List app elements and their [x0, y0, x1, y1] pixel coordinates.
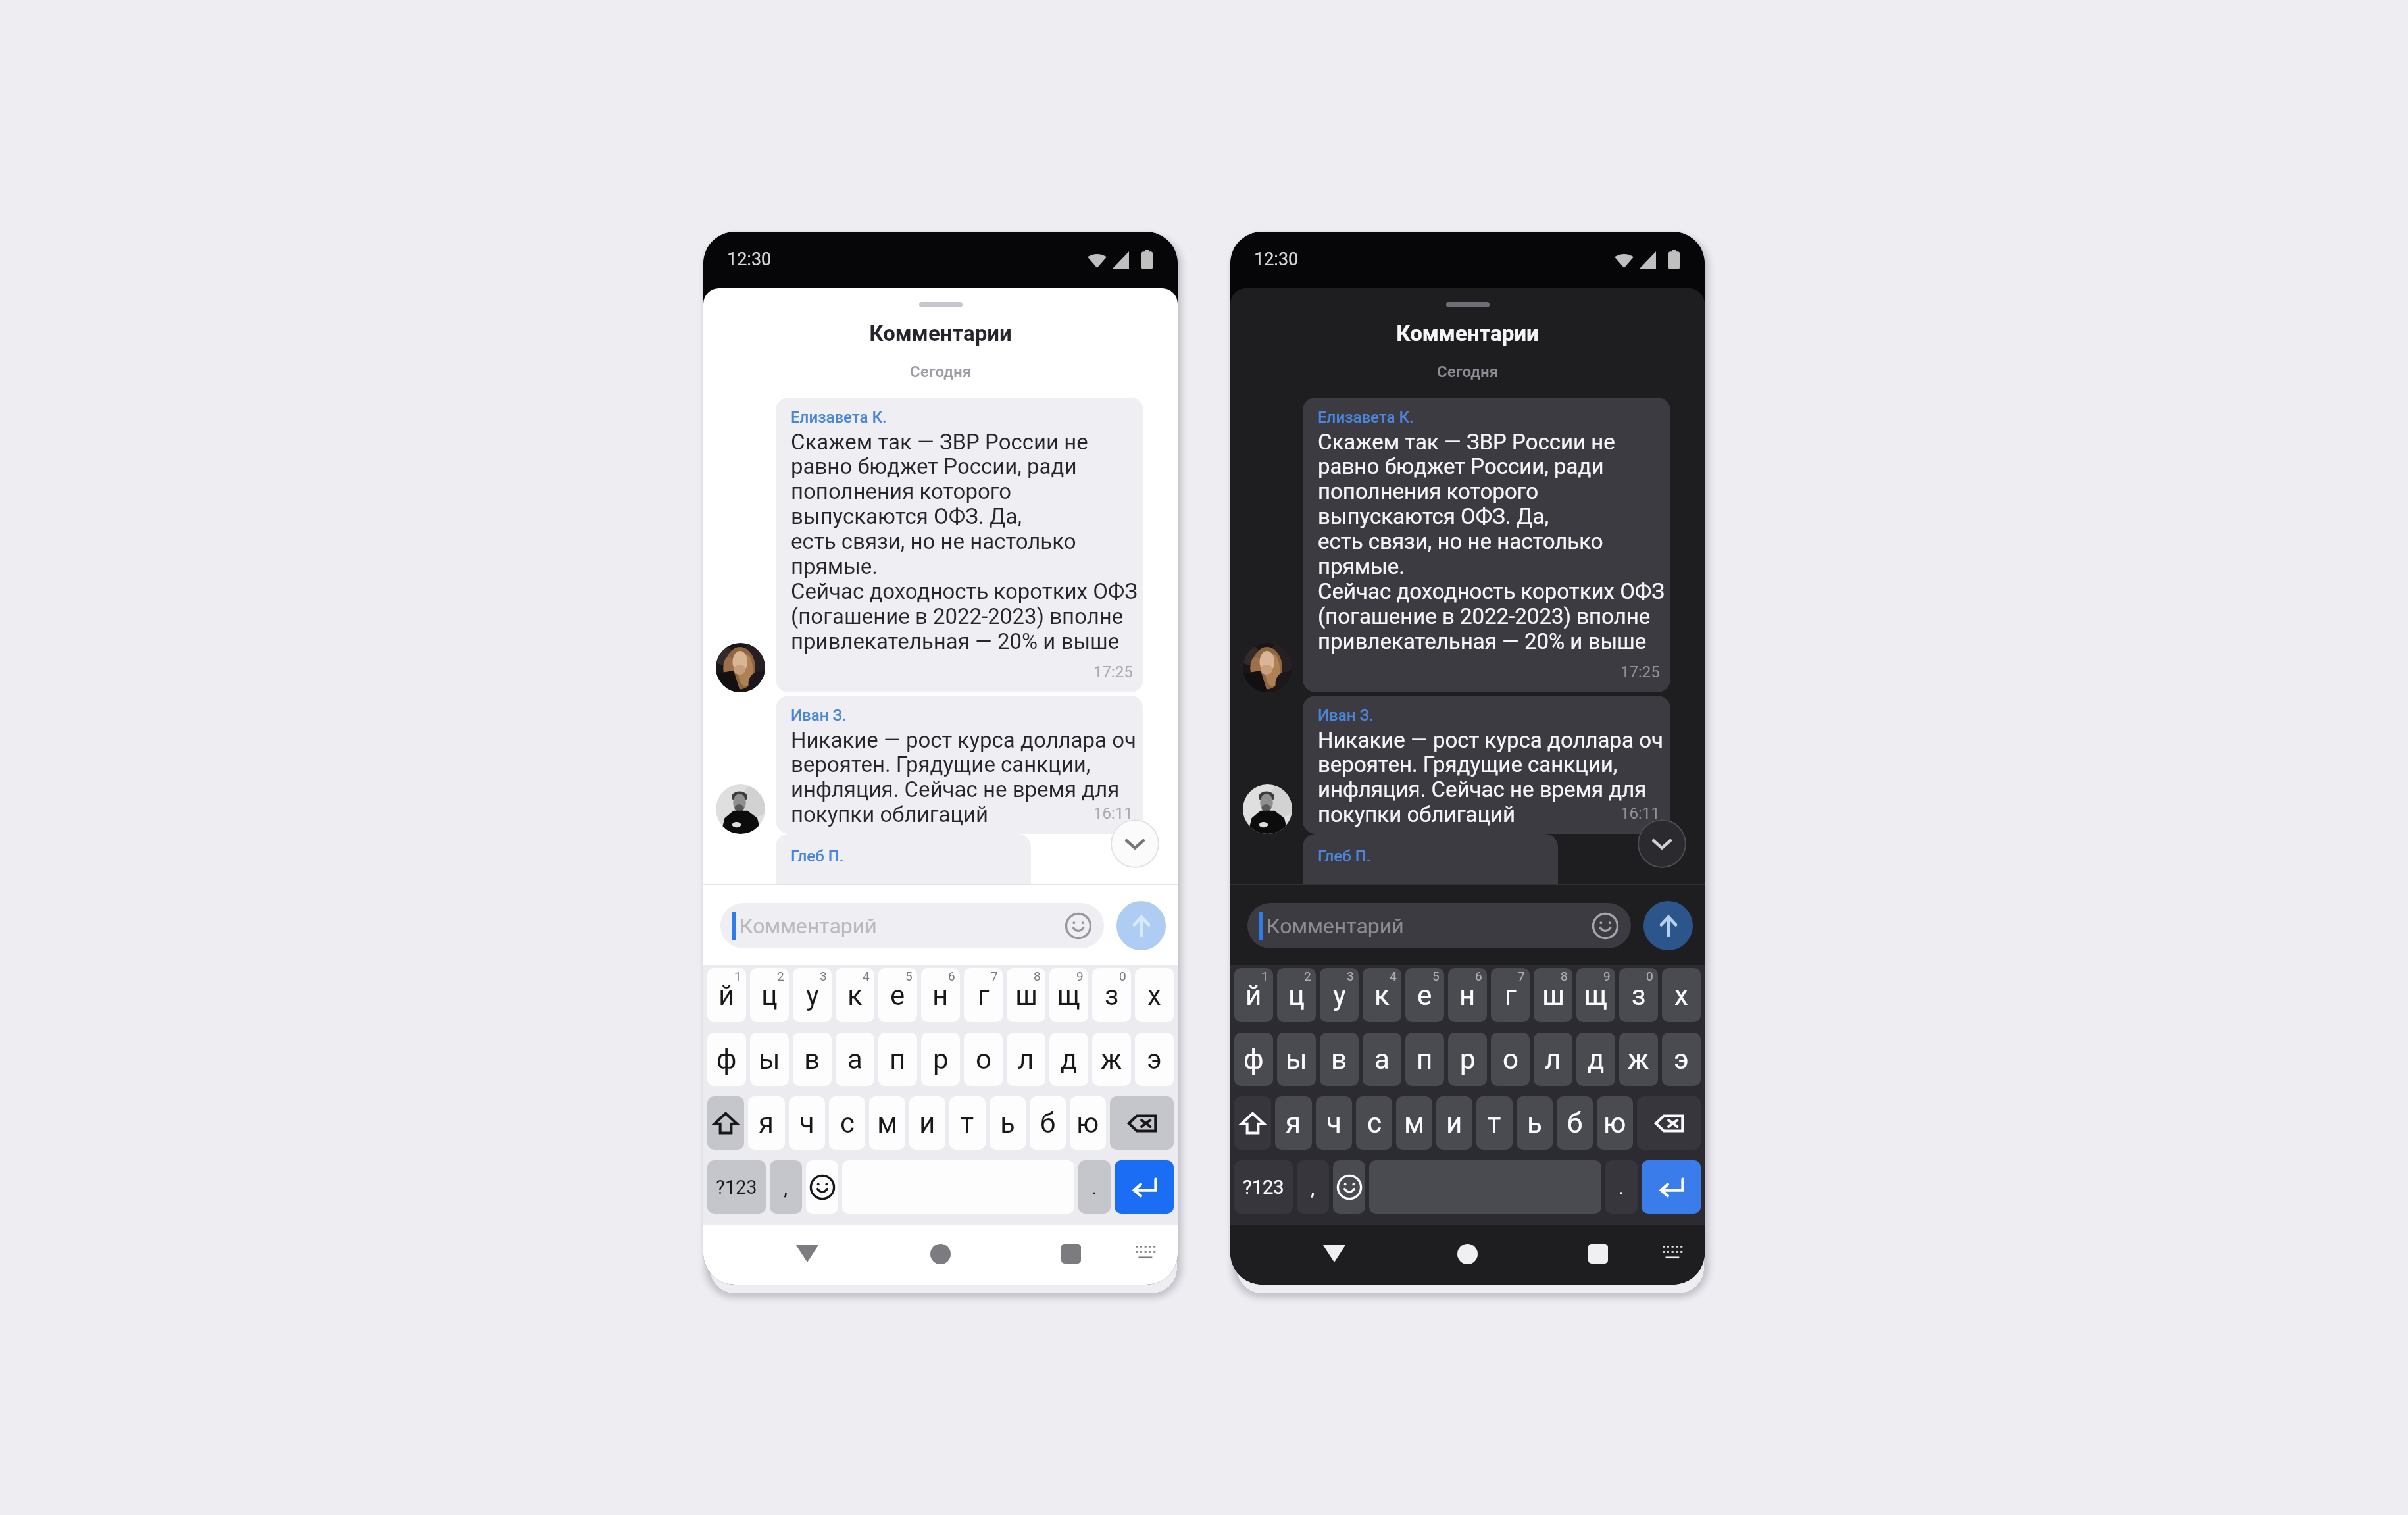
button[interactable]: Send comment [1643, 901, 1693, 950]
button[interactable]: Back [1308, 1225, 1361, 1283]
button[interactable]: о [964, 1033, 1003, 1086]
button[interactable]: Комментарий [720, 903, 1104, 948]
button[interactable]: о [1491, 1033, 1530, 1086]
button[interactable]: ю [1597, 1096, 1633, 1150]
button[interactable]: э [1135, 1033, 1174, 1086]
button[interactable]: з [1092, 968, 1131, 1022]
button[interactable]: Hide keyboard [1120, 1225, 1173, 1283]
button[interactable]: л [1534, 1033, 1572, 1086]
button[interactable]: с [829, 1096, 865, 1150]
button[interactable]: Open profile of Елизавета К. [716, 643, 765, 692]
button[interactable]: а [1363, 1033, 1401, 1086]
button[interactable]: а [836, 1033, 874, 1086]
button[interactable]: ь [1517, 1096, 1553, 1150]
button[interactable]: ?123 [1234, 1160, 1293, 1214]
button[interactable]: ц [750, 968, 789, 1022]
button[interactable]: . [1605, 1160, 1638, 1214]
button[interactable]: х [1662, 968, 1701, 1022]
button[interactable]: . [1078, 1160, 1111, 1214]
button[interactable]: ж [1619, 1033, 1658, 1086]
button[interactable]: т [1476, 1096, 1513, 1150]
button[interactable]: е [878, 968, 917, 1022]
button[interactable]: Enter [1115, 1160, 1174, 1214]
button[interactable]: Иван З. [776, 696, 1143, 834]
button[interactable]: м [1396, 1096, 1432, 1150]
button[interactable]: Елизавета К. [1303, 398, 1670, 692]
button[interactable]: Emoji [806, 1160, 838, 1214]
button[interactable]: щ [1576, 968, 1615, 1022]
button[interactable]: н [921, 968, 960, 1022]
button[interactable]: Елизавета К. [776, 398, 1143, 692]
button[interactable]: ы [750, 1033, 789, 1086]
button[interactable]: Emoji [1333, 1160, 1365, 1214]
button[interactable]: в [1320, 1033, 1359, 1086]
button[interactable]: Глеб П. [1303, 834, 1558, 893]
button[interactable]: к [836, 968, 874, 1022]
button[interactable]: , [1297, 1160, 1329, 1214]
button[interactable]: Open profile of Иван З. [1243, 784, 1292, 834]
button[interactable]: л [1007, 1033, 1045, 1086]
button[interactable]: Enter [1642, 1160, 1701, 1214]
button[interactable]: й [1234, 968, 1273, 1022]
button[interactable]: ф [707, 1033, 746, 1086]
button[interactable]: м [869, 1096, 905, 1150]
button[interactable]: р [921, 1033, 960, 1086]
button[interactable]: Home [914, 1225, 966, 1283]
button[interactable]: к [1363, 968, 1401, 1022]
button[interactable]: я [748, 1096, 785, 1150]
button[interactable]: Back [781, 1225, 834, 1283]
button[interactable]: х [1135, 968, 1174, 1022]
button[interactable]: ?123 [707, 1160, 766, 1214]
button[interactable]: г [1491, 968, 1530, 1022]
button[interactable]: в [793, 1033, 832, 1086]
button[interactable]: Scroll to latest comment [1638, 819, 1686, 868]
button[interactable]: Глеб П. [776, 834, 1031, 893]
button[interactable]: у [793, 968, 832, 1022]
button[interactable]: р [1448, 1033, 1487, 1086]
button[interactable]: Backspace [1110, 1096, 1174, 1150]
button[interactable]: д [1049, 1033, 1088, 1086]
button[interactable]: ь [990, 1096, 1026, 1150]
button[interactable]: у [1320, 968, 1359, 1022]
button[interactable]: Recent apps [1572, 1225, 1624, 1283]
button[interactable]: э [1662, 1033, 1701, 1086]
button[interactable]: Backspace [1637, 1096, 1701, 1150]
button[interactable]: Shift [1234, 1096, 1271, 1150]
button[interactable]: т [949, 1096, 986, 1150]
button[interactable]: с [1356, 1096, 1392, 1150]
button[interactable]: е [1405, 968, 1444, 1022]
button[interactable]: г [964, 968, 1003, 1022]
button[interactable]: Home [1441, 1225, 1493, 1283]
button[interactable]: ю [1070, 1096, 1106, 1150]
button[interactable]: ч [789, 1096, 825, 1150]
button[interactable]: Комментарий [1247, 903, 1631, 948]
button[interactable]: Hide keyboard [1647, 1225, 1700, 1283]
button[interactable]: Send comment [1116, 901, 1166, 950]
button[interactable]: ы [1277, 1033, 1316, 1086]
button[interactable]: й [707, 968, 746, 1022]
button[interactable]: ч [1316, 1096, 1352, 1150]
button[interactable]: щ [1049, 968, 1088, 1022]
button[interactable]: б [1557, 1096, 1593, 1150]
button[interactable]: п [878, 1033, 917, 1086]
button[interactable] [1369, 1160, 1601, 1214]
button[interactable]: н [1448, 968, 1487, 1022]
button[interactable]: д [1576, 1033, 1615, 1086]
button[interactable]: ш [1534, 968, 1572, 1022]
button[interactable]: Иван З. [1303, 696, 1670, 834]
button[interactable]: ц [1277, 968, 1316, 1022]
button[interactable]: з [1619, 968, 1658, 1022]
button[interactable]: , [770, 1160, 802, 1214]
button[interactable]: Open profile of Иван З. [716, 784, 765, 834]
button[interactable]: я [1275, 1096, 1312, 1150]
button[interactable]: и [909, 1096, 945, 1150]
button[interactable]: Scroll to latest comment [1111, 819, 1159, 868]
button[interactable]: ф [1234, 1033, 1273, 1086]
button[interactable]: Recent apps [1045, 1225, 1097, 1283]
button[interactable]: Open profile of Елизавета К. [1243, 643, 1292, 692]
button[interactable]: ж [1092, 1033, 1131, 1086]
button[interactable]: п [1405, 1033, 1444, 1086]
button[interactable]: б [1030, 1096, 1066, 1150]
button[interactable]: ш [1007, 968, 1045, 1022]
